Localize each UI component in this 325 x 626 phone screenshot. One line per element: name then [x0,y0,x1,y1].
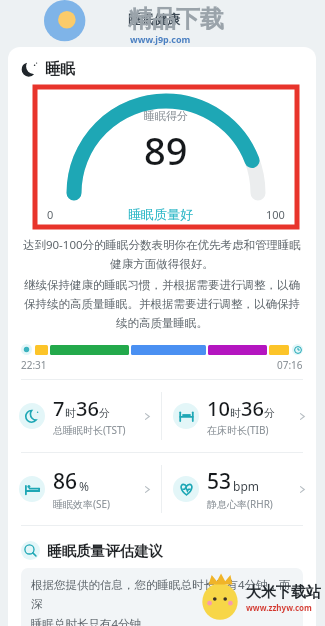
staticText: 22:31 [21,358,47,372]
other: 睡眠质量评估建议 [21,541,40,560]
other: 睡眠效率(SE) [19,476,45,502]
staticText: 53 [207,467,232,496]
staticText: 总睡眠时长(TST) [53,423,126,437]
staticText: 07:16 [277,358,303,372]
staticText: 10 [207,395,230,422]
other: 睡眠时长 [19,403,45,429]
staticText: 继续保持健康的睡眠习惯，并根据需要进行调整，以确保持续的高质量睡眠。并根据需要进… [22,278,302,331]
staticText: 静息心率(RHR) [207,497,273,511]
staticText: 时 [230,406,241,420]
button[interactable]: 静息心率(RHR) [162,453,316,525]
other: 静息心率(RHR) [173,476,199,502]
other: 在床时长 [173,403,199,429]
staticText: 分 [99,406,110,420]
button[interactable]: 睡眠质量评估建议 [8,530,316,568]
staticText: 根据您提供的信息，您的睡眠总时长只有4分钟，而深 睡眠总时长只有4分钟。 [31,577,293,626]
staticText: 36 [241,395,264,422]
staticText: 睡眠 [45,60,75,79]
staticText: 86 [53,467,78,496]
staticText: 100 [266,207,285,222]
staticText: 分 [264,406,275,420]
staticText: www.j9p.com [130,33,191,45]
staticText: % [79,478,89,494]
staticText: 睡眠质量好 [128,206,193,222]
staticText: bpm [233,478,259,494]
staticText: 大米下载站 [246,583,321,602]
button[interactable]: 在床时长 [162,380,316,452]
staticText: 0 [47,207,54,222]
staticText: 达到90-100分的睡眠分数表明你在优先考虑和管理睡眠健康方面做得很好。 [22,237,302,272]
button[interactable]: 睡眠时长 [8,380,161,452]
staticText: 时 [65,406,76,420]
staticText: 36 [76,395,99,422]
staticText: 睡眠效率(SE) [53,497,111,511]
staticText: 睡眠健康 [128,11,180,27]
staticText: www.zzhyw.com [246,602,312,613]
staticText: 睡眠得分 [144,109,188,123]
staticText: 精品下载 [128,4,224,34]
staticText: 睡眠质量评估建议 [47,542,163,560]
staticText: 在床时长(TIB) [207,423,269,437]
button[interactable]: 睡眠 [8,47,316,87]
staticText: 89 [144,124,188,176]
staticText: 7 [53,395,65,422]
button[interactable]: 睡眠效率(SE) [8,453,161,525]
